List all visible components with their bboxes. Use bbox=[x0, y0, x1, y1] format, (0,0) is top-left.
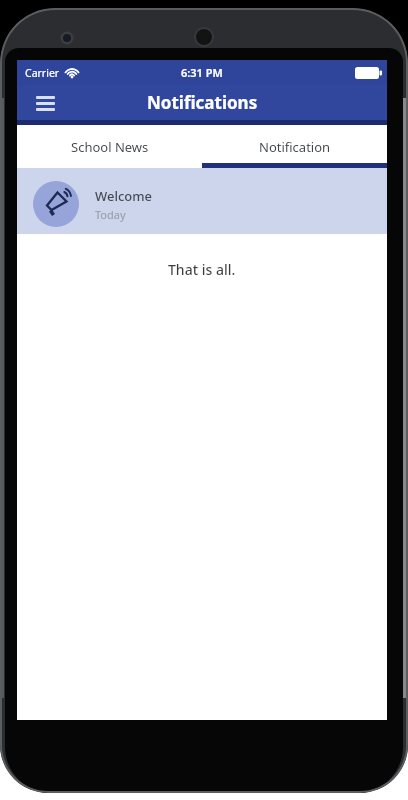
button[interactable]: Notification bbox=[202, 125, 387, 168]
staticText: That is all. bbox=[168, 260, 236, 279]
staticText: Welcome bbox=[95, 187, 153, 205]
staticText: 6:31 PM bbox=[181, 65, 223, 80]
staticText: Today bbox=[95, 207, 126, 222]
button[interactable] bbox=[29, 88, 61, 118]
staticText: Carrier bbox=[25, 66, 60, 80]
staticText: School News bbox=[71, 138, 149, 156]
button[interactable]: Welcome bbox=[17, 168, 387, 234]
button[interactable]: School News bbox=[17, 125, 202, 168]
staticText: Notification bbox=[259, 138, 331, 156]
staticText: Notifications bbox=[147, 91, 258, 114]
